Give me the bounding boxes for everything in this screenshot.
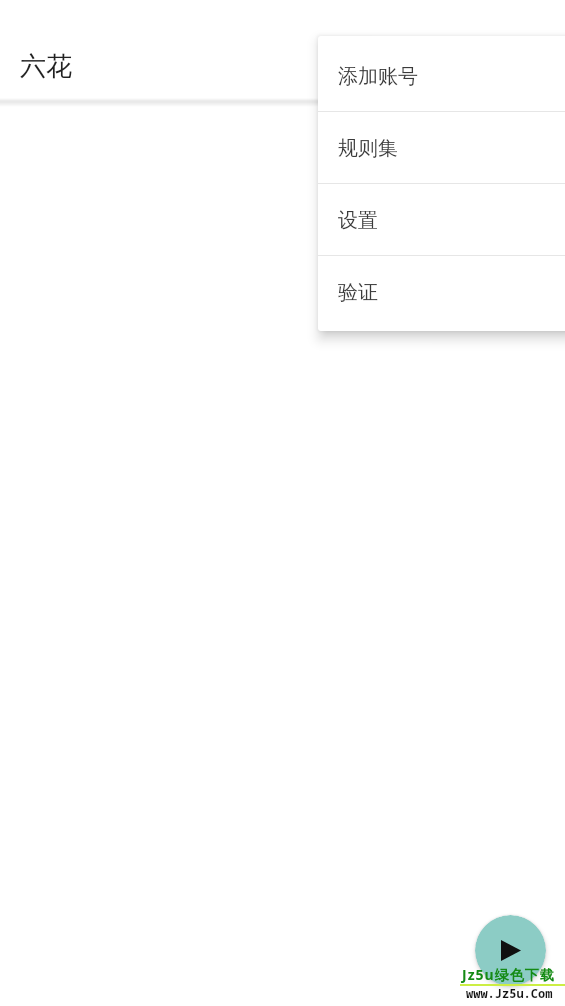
staticText: 验证 bbox=[338, 280, 378, 305]
button[interactable]: 设置 bbox=[318, 184, 565, 255]
staticText: Jz5u绿色下载 bbox=[462, 965, 555, 984]
button[interactable]: 规则集 bbox=[318, 112, 565, 183]
button[interactable]: 添加账号 bbox=[318, 40, 565, 111]
staticText: 六花 bbox=[20, 50, 72, 83]
staticText: 添加账号 bbox=[338, 64, 418, 89]
staticText: www.Jz5u.Com bbox=[466, 985, 553, 1001]
button[interactable]: 验证 bbox=[318, 256, 565, 327]
staticText: 设置 bbox=[338, 208, 378, 233]
staticText: 规则集 bbox=[338, 136, 398, 161]
button[interactable]: Start bbox=[475, 915, 546, 986]
